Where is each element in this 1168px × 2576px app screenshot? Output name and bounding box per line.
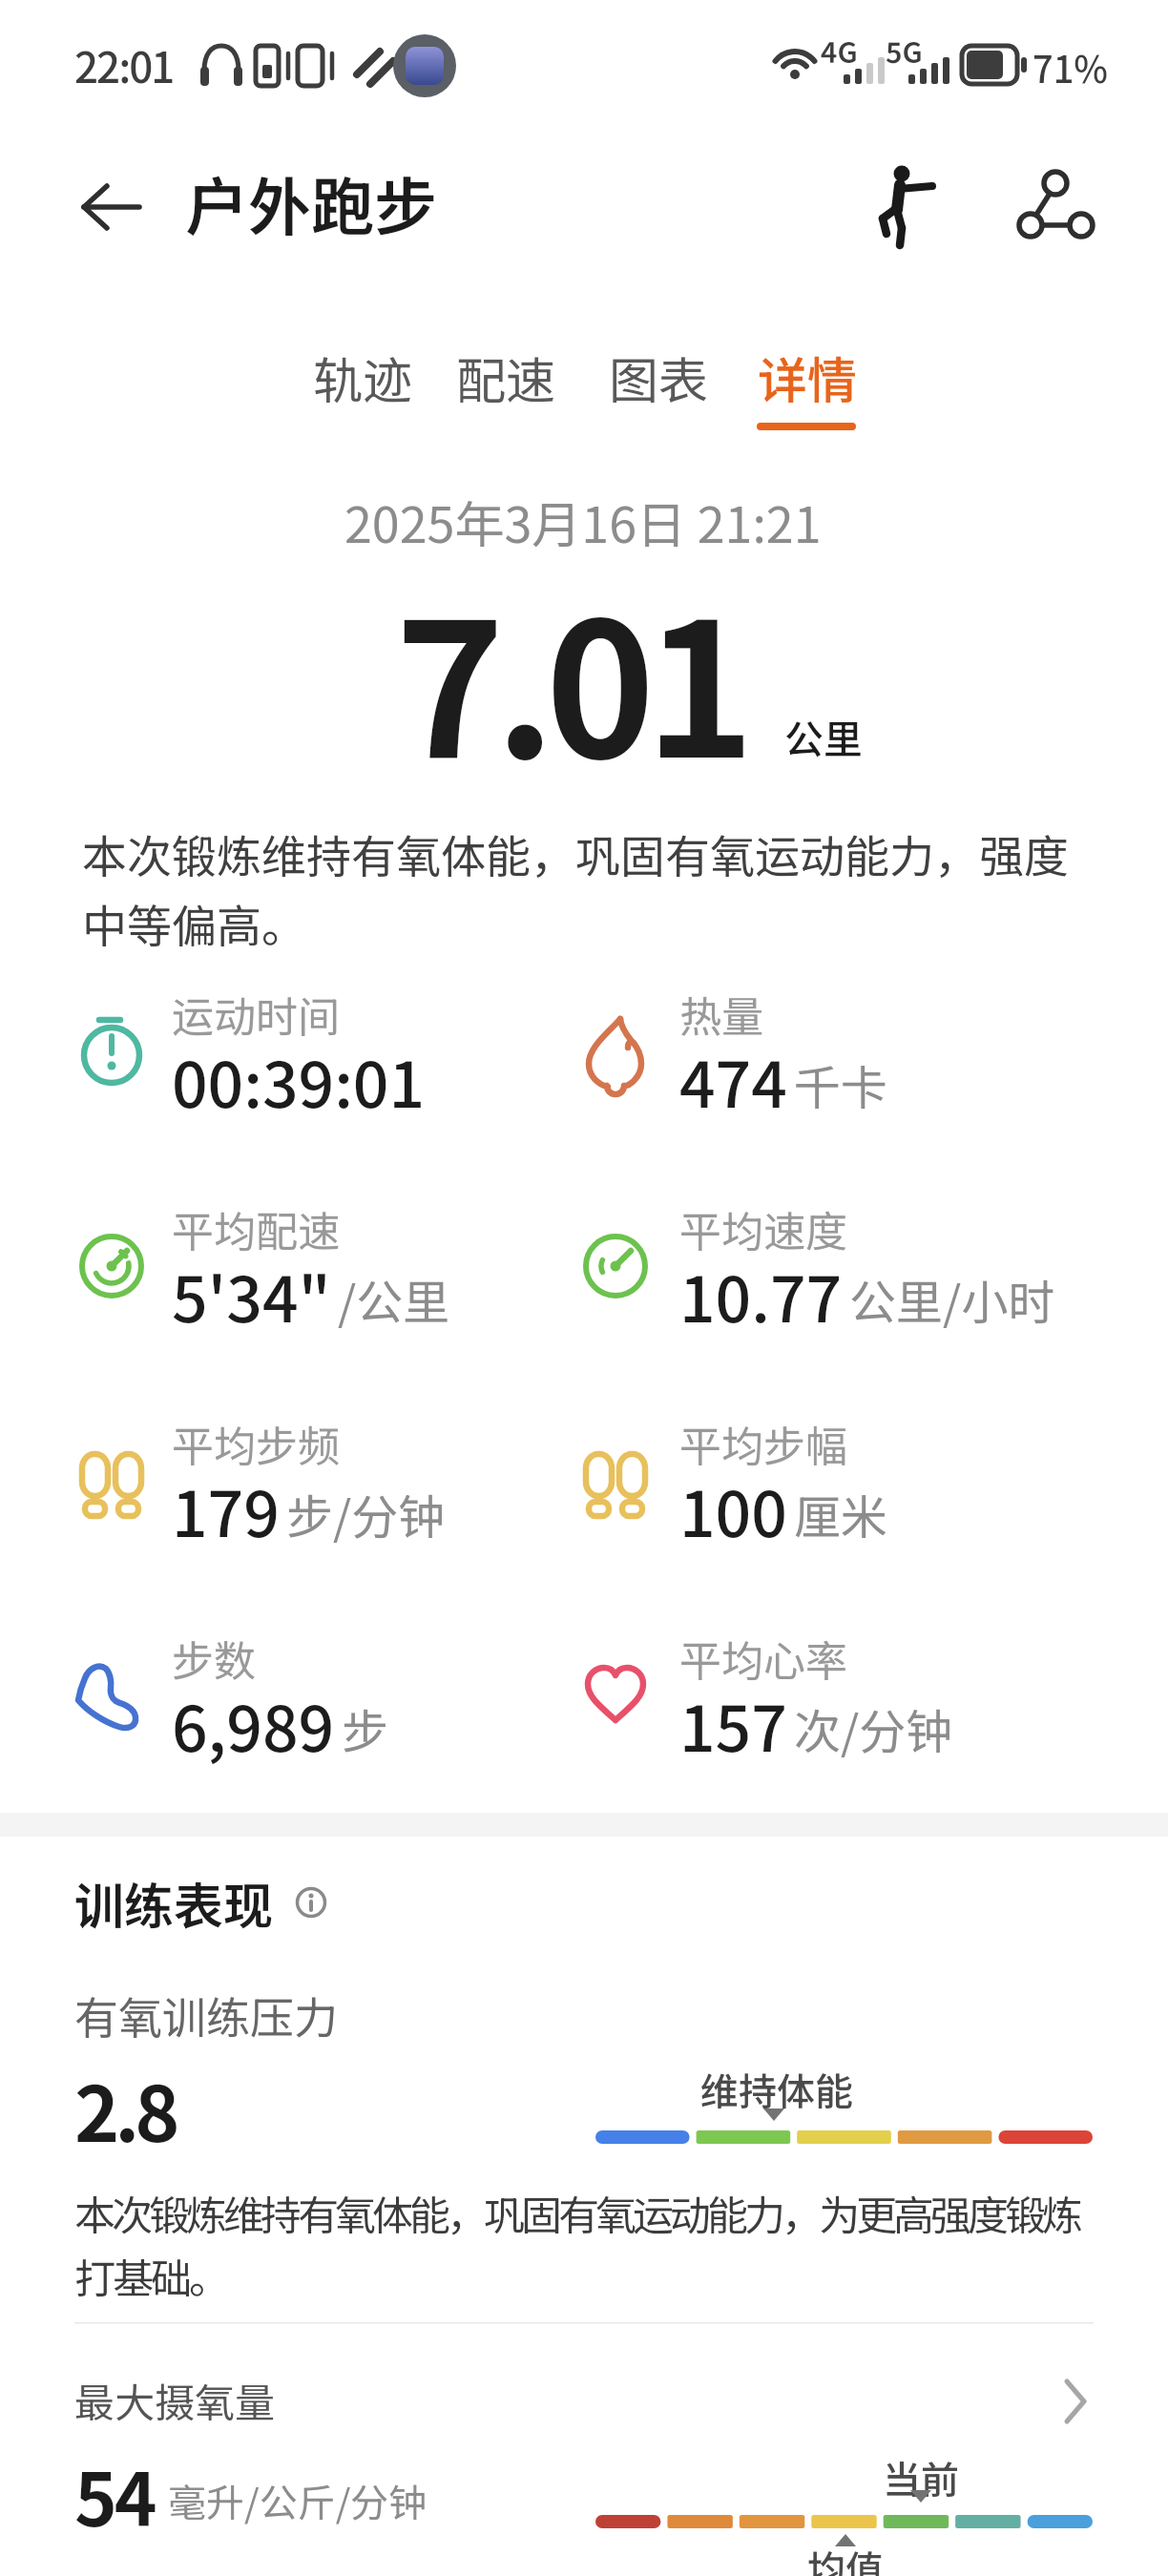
staticText: 运动时间 [172, 984, 340, 1045]
staticText: 详情 [758, 342, 858, 413]
staticText: 平均速度 [679, 1198, 847, 1259]
staticText: 图表 [609, 342, 709, 413]
staticText: 轨迹 [313, 342, 413, 413]
staticText: 100 [679, 1464, 787, 1555]
staticText: 配速 [456, 342, 556, 413]
staticText: 维持体能 [700, 2062, 853, 2117]
staticText: 00:39:01 [172, 1034, 426, 1126]
staticText: 中等偏高。 [82, 890, 306, 955]
staticText: 打基础。 [74, 2246, 227, 2305]
staticText: 厘米 [794, 1480, 888, 1548]
staticText: 7.01 [395, 542, 745, 811]
button[interactable] [1013, 158, 1101, 246]
staticText: 54 [74, 2442, 155, 2547]
staticText: 157 [679, 1678, 787, 1770]
staticText: 474 [679, 1034, 787, 1126]
staticText: 71% [1032, 41, 1109, 93]
button[interactable] [67, 162, 157, 253]
staticText: 2.8 [74, 2053, 176, 2164]
button[interactable]: 配速 [439, 324, 573, 429]
staticText: 步数 [172, 1628, 256, 1689]
staticText: 公里/小时 [849, 1265, 1055, 1333]
staticText: 平均步幅 [679, 1413, 847, 1474]
staticText: 训练表现 [74, 1867, 274, 1939]
staticText: /公里 [338, 1265, 450, 1333]
staticText: 10.77 [679, 1249, 843, 1340]
staticText: 步/分钟 [286, 1480, 446, 1548]
staticText: 4G [821, 30, 858, 71]
staticText: 6,989 [172, 1678, 335, 1770]
button[interactable] [859, 158, 947, 246]
button[interactable]: 详情 [740, 324, 874, 429]
staticText: 毫升/公斤/分钟 [168, 2473, 428, 2528]
button[interactable]: 轨迹 [296, 324, 429, 429]
staticText: 平均心率 [679, 1628, 847, 1689]
staticText: 5'34" [172, 1249, 331, 1340]
staticText: 有氧训练压力 [74, 1984, 338, 2047]
staticText: 平均配速 [172, 1198, 340, 1259]
staticText: 本次锻炼维持有氧体能，巩固有氧运动能力，强度 [82, 821, 1069, 885]
staticText: 步 [342, 1694, 389, 1762]
staticText: 5G [886, 30, 923, 71]
staticText: 均值 [807, 2540, 884, 2576]
button[interactable] [286, 1878, 336, 1927]
staticText: 次/分钟 [794, 1694, 953, 1762]
staticText: 户外跑步 [185, 156, 437, 248]
staticText: 平均步频 [172, 1413, 340, 1474]
staticText: 最大摄氧量 [74, 2371, 276, 2429]
button[interactable] [0, 2357, 1168, 2452]
staticText: 热量 [679, 984, 763, 1045]
staticText: 当前 [883, 2450, 959, 2503]
staticText: 本次锻炼维持有氧体能，巩固有氧运动能力，为更高强度锻炼 [74, 2183, 1079, 2242]
staticText: 179 [172, 1464, 280, 1555]
staticText: 千卡 [794, 1050, 888, 1118]
staticText: 22:01 [74, 34, 174, 95]
staticText: 2025年3月16日 21:21 [344, 486, 822, 557]
button[interactable]: 图表 [592, 324, 725, 429]
staticText: 公里 [784, 708, 863, 764]
